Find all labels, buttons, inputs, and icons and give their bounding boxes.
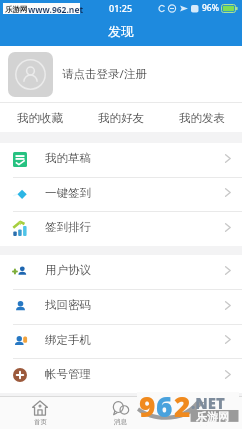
staticText: 乐游网 — [196, 410, 229, 424]
staticText: 9 — [139, 387, 156, 420]
staticText: 帐号管理 — [45, 367, 91, 381]
staticText: 我的好友 — [98, 111, 144, 125]
button[interactable]: 我的草稿 — [0, 143, 242, 177]
button[interactable]: 我的发表 — [161, 103, 242, 132]
button[interactable]: 签到排行 — [0, 212, 242, 246]
staticText: 用户协议 — [45, 263, 91, 277]
staticText: .NET — [191, 393, 225, 413]
staticText: 96% — [202, 2, 219, 14]
button[interactable]: 找回密码 — [0, 290, 242, 324]
staticText: 一键签到 — [45, 186, 91, 200]
staticText: 请点击登录/注册 — [62, 66, 147, 82]
staticText: 我的收藏 — [17, 111, 63, 125]
staticText: 我的 — [195, 418, 208, 426]
button[interactable]: Home — [0, 397, 80, 429]
staticText: 2 — [174, 387, 191, 420]
staticText: 消息 — [114, 418, 127, 426]
button[interactable]: Profile — [161, 397, 242, 429]
button[interactable]: Messages — [80, 397, 161, 429]
button[interactable]: 我的好友 — [80, 103, 161, 132]
staticText: 签到排行 — [45, 220, 91, 234]
button[interactable]: 帐号管理 — [0, 359, 242, 393]
button[interactable]: 一键签到 — [0, 178, 242, 211]
button[interactable]: 绑定手机 — [0, 325, 242, 358]
staticText: 6 — [156, 387, 173, 420]
staticText: 找回密码 — [45, 298, 91, 312]
button[interactable]: 请点击登录/注册 — [0, 46, 242, 102]
staticText: www.962.net — [28, 4, 84, 15]
staticText: 我的发表 — [179, 111, 225, 125]
staticText: 01:25 — [109, 2, 133, 14]
staticText: 发现 — [108, 23, 134, 39]
button[interactable]: 用户协议 — [0, 255, 242, 289]
staticText: 绑定手机 — [45, 333, 91, 347]
staticText: 乐游网 — [5, 5, 28, 14]
staticText: 我的草稿 — [45, 151, 91, 165]
button[interactable]: 我的收藏 — [0, 103, 80, 132]
staticText: 首页 — [34, 418, 47, 426]
